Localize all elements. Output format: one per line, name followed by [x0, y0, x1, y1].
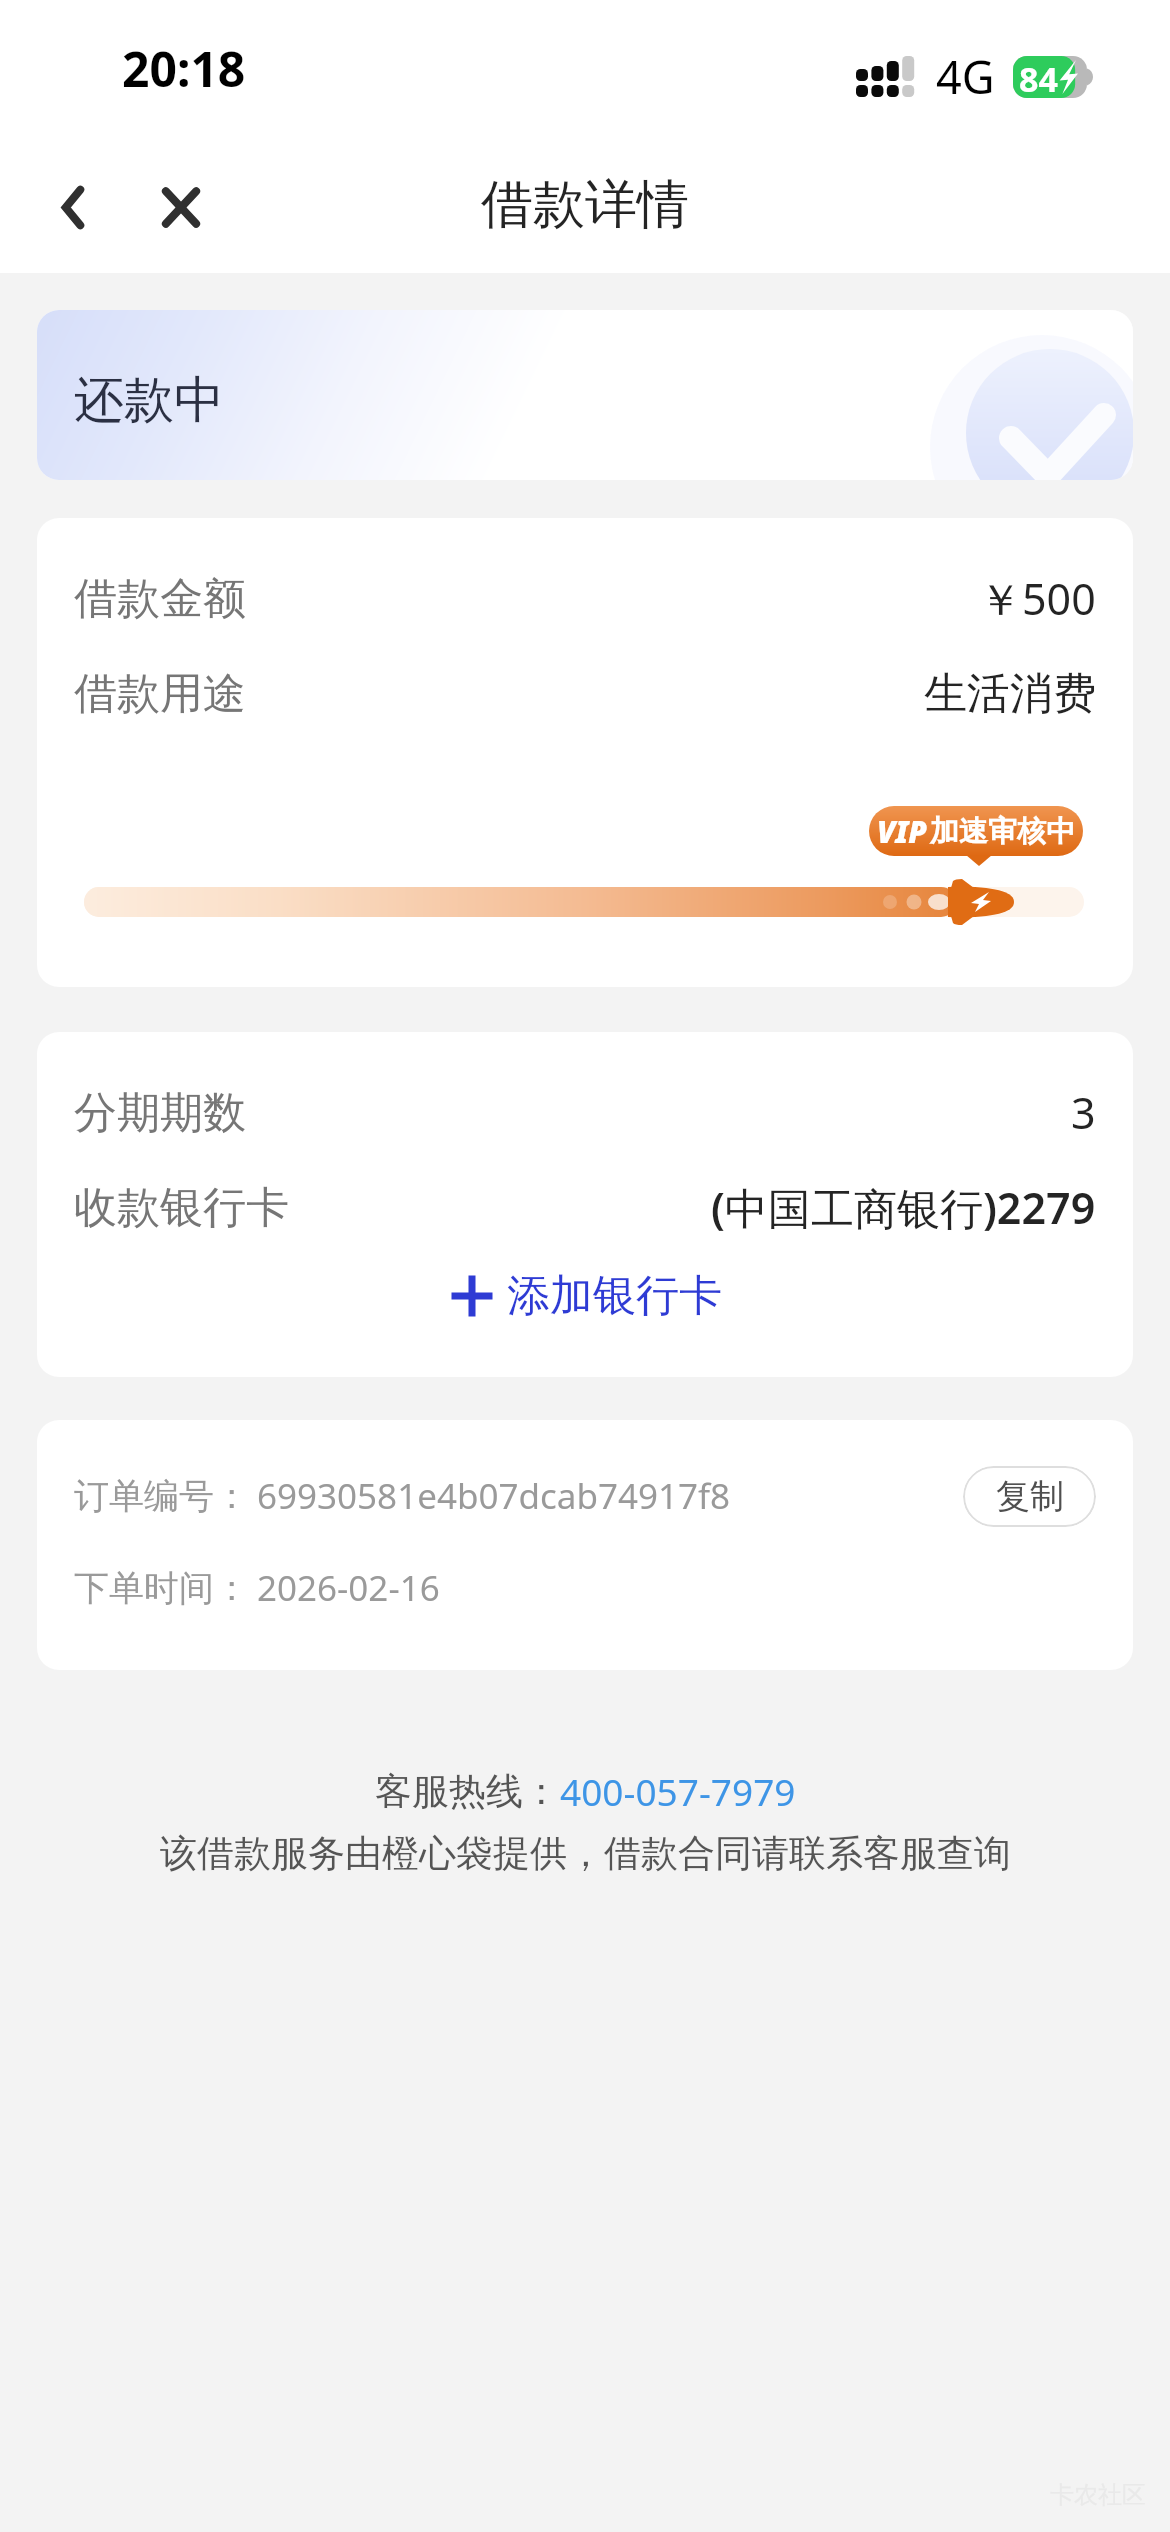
staticText: 该借款服务由橙心袋提供，借款合同请联系客服查询	[160, 1830, 1011, 1877]
staticText: 借款用途	[74, 667, 246, 721]
staticText: 客服热线：	[375, 1768, 560, 1815]
staticText: 订单编号：	[74, 1474, 249, 1518]
staticText: 收款银行卡	[74, 1181, 289, 1235]
staticText: 下单时间：	[74, 1566, 249, 1610]
button[interactable]: Close	[136, 162, 226, 252]
staticText: 3	[1071, 1083, 1096, 1142]
staticText: 4G	[936, 46, 995, 107]
button[interactable]: Back	[28, 162, 118, 252]
staticText: VIP	[877, 811, 927, 852]
staticText: 69930581e4b07dcab74917f8	[257, 1472, 731, 1520]
staticText: 借款详情	[481, 172, 689, 238]
staticText: 20:18	[122, 36, 246, 101]
button[interactable]: 添加银行卡	[440, 1255, 736, 1337]
staticText: 84	[1019, 56, 1058, 98]
button[interactable]: 400-057-7979	[560, 1766, 796, 1816]
staticText: (中国工商银行)2279	[711, 1178, 1096, 1237]
staticText: 添加银行卡	[507, 1269, 722, 1323]
button[interactable]: 复制	[963, 1466, 1096, 1527]
staticText: 2026-02-16	[257, 1564, 440, 1612]
staticText: ￥500	[979, 569, 1096, 628]
staticText: 生活消费	[924, 667, 1096, 721]
staticText: 复制	[996, 1475, 1064, 1518]
staticText: 卡农社区	[1050, 2480, 1146, 2510]
button[interactable]: VIP	[869, 806, 1083, 856]
staticText: 加速审核中	[930, 813, 1075, 850]
staticText: 分期期数	[74, 1086, 246, 1140]
staticText: 借款金额	[74, 572, 246, 626]
staticText: 还款中	[74, 369, 224, 432]
